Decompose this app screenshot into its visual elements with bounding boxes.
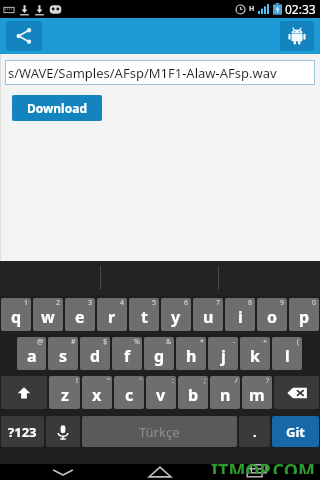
staticText: ! — [76, 376, 78, 386]
button[interactable]: 5 — [129, 298, 159, 331]
staticText: * — [200, 337, 204, 347]
staticText: c — [125, 384, 134, 406]
staticText: 7 — [216, 298, 221, 308]
staticText: 8 — [248, 298, 253, 308]
staticText: v — [156, 384, 166, 406]
button[interactable]: 1 — [1, 298, 31, 331]
staticText: k — [250, 345, 260, 367]
button[interactable]: ' — [114, 376, 144, 409]
staticText: Türkçe — [139, 423, 180, 441]
staticText: 5 — [152, 298, 157, 308]
staticText: u — [203, 306, 214, 328]
button[interactable]: Türkçe — [82, 416, 237, 447]
staticText: b — [188, 384, 199, 406]
staticText: ? — [266, 376, 270, 386]
staticText: n — [220, 384, 231, 406]
button[interactable]: ( — [272, 337, 302, 370]
staticText: f — [124, 345, 131, 367]
staticText: 6 — [184, 298, 189, 308]
button[interactable]: s/WAVE/Samples/AFsp/M1F1-Alaw-AFsp.wav — [5, 60, 315, 85]
button[interactable]: % — [112, 337, 142, 370]
staticText: 1 — [24, 298, 29, 308]
staticText: " — [107, 376, 110, 386]
staticText: Git — [286, 423, 305, 441]
button[interactable]: Recent apps — [223, 464, 293, 480]
staticText: . — [253, 423, 257, 441]
button[interactable]: : — [146, 376, 176, 409]
staticText: a — [27, 345, 37, 367]
button[interactable]: 6 — [161, 298, 191, 331]
staticText: q — [11, 306, 22, 328]
button[interactable]: - — [208, 337, 238, 370]
button[interactable]: # — [48, 337, 78, 370]
staticText: 3 — [88, 298, 93, 308]
button[interactable]: 4 — [97, 298, 127, 331]
staticText: + — [263, 337, 268, 347]
button[interactable]: ; — [178, 376, 208, 409]
staticText: z — [61, 384, 69, 406]
staticText: : — [172, 376, 174, 386]
button[interactable]: & — [144, 337, 174, 370]
staticText: x — [92, 384, 102, 406]
staticText: ITMOP.COM — [211, 458, 316, 474]
button[interactable]: * — [176, 337, 206, 370]
button[interactable]: Home — [125, 464, 195, 480]
button[interactable]: @ — [17, 337, 46, 370]
button[interactable]: Voice input — [46, 416, 80, 447]
button[interactable]: Shift — [1, 376, 47, 409]
button[interactable]: " — [82, 376, 112, 409]
button[interactable]: 9 — [257, 298, 287, 331]
staticText: H — [249, 4, 255, 14]
staticText: 0 — [312, 298, 317, 308]
button[interactable]: Share — [6, 21, 42, 51]
staticText: s — [59, 345, 68, 367]
staticText: d — [90, 345, 101, 367]
button[interactable]: 3 — [65, 298, 95, 331]
button[interactable]: Back — [28, 464, 98, 480]
staticText: w — [41, 306, 55, 328]
staticText: 2 — [56, 298, 61, 308]
staticText: ; — [204, 376, 206, 386]
staticText: # — [71, 337, 76, 347]
staticText: p — [299, 306, 310, 328]
staticText: 4 — [120, 298, 125, 308]
button[interactable]: Backspace — [274, 376, 319, 409]
button[interactable]: 7 — [193, 298, 223, 331]
staticText: r — [108, 306, 116, 328]
staticText: Download — [27, 100, 87, 116]
staticText: / — [235, 376, 238, 386]
staticText: o — [267, 306, 278, 328]
button[interactable]: / — [210, 376, 240, 409]
button[interactable]: Download — [12, 95, 102, 121]
button[interactable]: . — [239, 416, 270, 447]
button[interactable]: + — [240, 337, 270, 370]
staticText: t — [141, 306, 148, 328]
button[interactable]: Android app — [280, 21, 314, 51]
staticText: - — [233, 337, 236, 347]
staticText: e — [75, 306, 85, 328]
staticText: $ — [103, 337, 108, 347]
staticText: l — [285, 345, 290, 367]
staticText: 02:33 — [285, 1, 316, 17]
staticText: @ — [37, 337, 44, 347]
staticText: 9 — [280, 298, 285, 308]
staticText: i — [238, 306, 243, 328]
staticText: ( — [297, 337, 300, 347]
button[interactable]: ? — [242, 376, 272, 409]
button[interactable]: $ — [80, 337, 110, 370]
staticText: % — [134, 337, 140, 347]
staticText: s/WAVE/Samples/AFsp/M1F1-Alaw-AFsp.wav — [8, 64, 277, 82]
staticText: & — [166, 337, 172, 347]
button[interactable]: ! — [49, 376, 80, 409]
button[interactable]: Git — [272, 416, 319, 447]
button[interactable]: 8 — [225, 298, 255, 331]
staticText: j — [221, 345, 226, 367]
button[interactable]: 0 — [289, 298, 319, 331]
button[interactable]: ?123 — [1, 416, 44, 447]
staticText: y — [171, 306, 181, 328]
staticText: h — [186, 345, 197, 367]
staticText: ?123 — [8, 423, 37, 441]
staticText: g — [154, 345, 165, 367]
staticText: ' — [140, 376, 142, 386]
button[interactable]: 2 — [33, 298, 63, 331]
